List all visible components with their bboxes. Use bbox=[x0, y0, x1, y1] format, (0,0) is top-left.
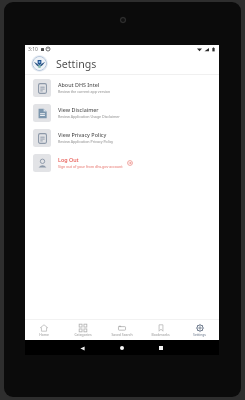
staticText: Categories bbox=[74, 332, 92, 337]
staticText: Review Application Privacy Policy bbox=[58, 139, 114, 144]
staticText: Settings bbox=[193, 332, 206, 337]
staticText: 3:10 bbox=[28, 46, 38, 53]
staticText: Settings bbox=[56, 57, 97, 71]
button[interactable]: About DHS Intel bbox=[25, 75, 219, 100]
staticText: Review the current app version bbox=[58, 89, 111, 94]
button[interactable]: Categories bbox=[63, 320, 102, 337]
button[interactable]: Back bbox=[77, 343, 87, 353]
staticText: About DHS Intel bbox=[58, 81, 100, 88]
button[interactable]: View Privacy Policy bbox=[25, 125, 219, 150]
button[interactable]: Home bbox=[117, 343, 127, 353]
button[interactable]: Bookmarks bbox=[141, 320, 180, 337]
button[interactable]: Home bbox=[25, 320, 63, 337]
staticText: View Privacy Policy bbox=[58, 131, 107, 138]
button[interactable]: Settings bbox=[180, 320, 219, 337]
staticText: Sign out of your from dhs.gov account bbox=[58, 164, 123, 169]
staticText: Log Out bbox=[58, 156, 79, 163]
button[interactable]: View Disclaimer bbox=[25, 100, 219, 125]
button[interactable]: Recent apps bbox=[156, 343, 166, 353]
button[interactable]: Saved Search bbox=[102, 320, 141, 337]
staticText: View Disclaimer bbox=[58, 106, 99, 113]
staticText: Home bbox=[39, 332, 49, 337]
staticText: Review Application Usage Disclaimer bbox=[58, 114, 120, 119]
staticText: Saved Search bbox=[111, 332, 133, 337]
staticText: Bookmarks bbox=[151, 332, 170, 337]
button[interactable]: Log Out bbox=[25, 150, 219, 175]
